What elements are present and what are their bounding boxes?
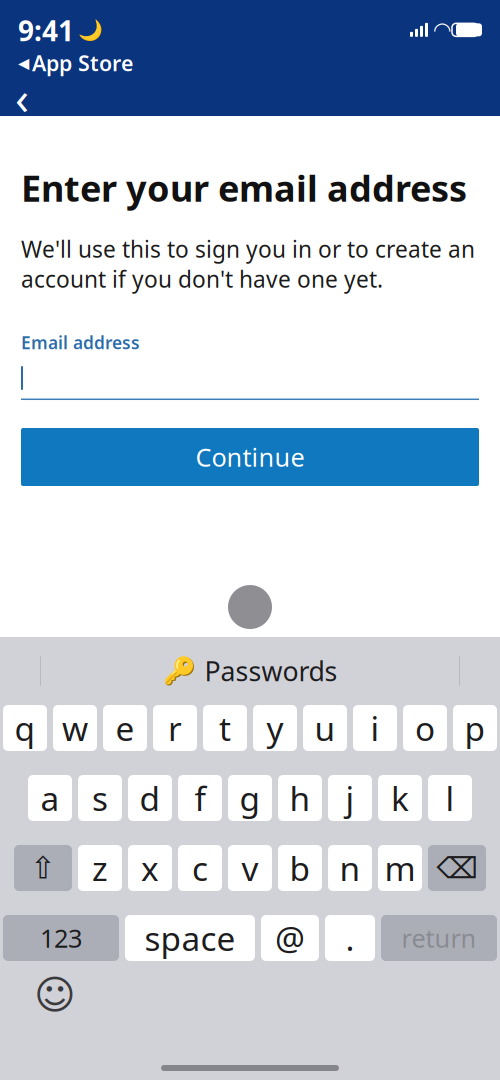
staticText: Continue bbox=[195, 440, 304, 474]
staticText: Email address bbox=[21, 331, 140, 354]
staticText: g bbox=[239, 776, 260, 820]
staticText: c bbox=[192, 846, 208, 890]
button[interactable]: Delete bbox=[428, 845, 486, 891]
button[interactable]: l bbox=[428, 775, 472, 821]
staticText: n bbox=[339, 846, 360, 890]
button[interactable]: 🔑 bbox=[162, 653, 337, 689]
button[interactable]: Back bbox=[0, 77, 44, 117]
staticText: 123 bbox=[40, 921, 82, 955]
button[interactable]: a bbox=[28, 775, 72, 821]
button[interactable]: u bbox=[303, 705, 347, 751]
button[interactable]: Emoji bbox=[33, 975, 77, 1015]
staticText: 🌙 bbox=[78, 19, 103, 42]
button[interactable]: c bbox=[178, 845, 222, 891]
button[interactable]: q bbox=[3, 705, 47, 751]
staticText: d bbox=[139, 776, 160, 820]
button[interactable]: . bbox=[325, 915, 375, 961]
staticText: ◀ bbox=[18, 55, 29, 71]
staticText: t bbox=[219, 706, 231, 750]
staticText: w bbox=[62, 706, 88, 750]
staticText: f bbox=[194, 776, 205, 820]
button[interactable]: t bbox=[203, 705, 247, 751]
button[interactable]: b bbox=[278, 845, 322, 891]
staticText: a bbox=[40, 776, 59, 820]
button[interactable]: Continue bbox=[21, 428, 479, 486]
button[interactable]: r bbox=[153, 705, 197, 751]
staticText: We'll use this to sign you in or to crea… bbox=[21, 234, 475, 294]
staticText: @ bbox=[275, 916, 305, 960]
button[interactable]: k bbox=[378, 775, 422, 821]
staticText: App Store bbox=[32, 49, 133, 77]
staticText: s bbox=[92, 776, 108, 820]
staticText: return bbox=[401, 921, 476, 955]
button[interactable]: j bbox=[328, 775, 372, 821]
staticText: space bbox=[144, 916, 235, 960]
staticText: z bbox=[92, 846, 108, 890]
button[interactable]: z bbox=[78, 845, 122, 891]
button[interactable]: e bbox=[103, 705, 147, 751]
staticText: i bbox=[370, 706, 379, 750]
button[interactable]: 123 bbox=[3, 915, 119, 961]
staticText: y bbox=[266, 706, 283, 750]
staticText: l bbox=[445, 776, 454, 820]
staticText: o bbox=[415, 706, 435, 750]
button[interactable]: m bbox=[378, 845, 422, 891]
staticText: 🔑 bbox=[162, 656, 195, 686]
button[interactable]: p bbox=[453, 705, 497, 751]
button[interactable]: i bbox=[353, 705, 397, 751]
button[interactable]: y bbox=[253, 705, 297, 751]
staticText: e bbox=[115, 706, 134, 750]
staticText: r bbox=[168, 706, 182, 750]
staticText: ☺ bbox=[34, 972, 76, 1018]
staticText: m bbox=[384, 846, 415, 890]
button[interactable]: s bbox=[78, 775, 122, 821]
staticText: . bbox=[345, 916, 354, 960]
button[interactable]: space bbox=[125, 915, 255, 961]
button[interactable]: Shift bbox=[14, 845, 72, 891]
staticText: j bbox=[345, 776, 354, 820]
staticText: ⇧ bbox=[30, 851, 56, 885]
staticText: ◠ bbox=[434, 18, 450, 42]
button[interactable]: d bbox=[128, 775, 172, 821]
button[interactable]: f bbox=[178, 775, 222, 821]
staticText: q bbox=[14, 706, 35, 750]
button[interactable]: return bbox=[381, 915, 497, 961]
staticText: x bbox=[141, 846, 159, 890]
staticText: 9:41 bbox=[18, 12, 74, 49]
button[interactable]: o bbox=[403, 705, 447, 751]
button[interactable]: n bbox=[328, 845, 372, 891]
staticText: Enter your email address bbox=[21, 164, 467, 212]
staticText: h bbox=[289, 776, 310, 820]
staticText: ⌫ bbox=[436, 851, 477, 885]
button[interactable]: h bbox=[278, 775, 322, 821]
staticText: u bbox=[314, 706, 335, 750]
staticText: b bbox=[289, 846, 310, 890]
button[interactable]: w bbox=[53, 705, 97, 751]
button[interactable]: v bbox=[228, 845, 272, 891]
staticText: p bbox=[464, 706, 485, 750]
staticText: ‹ bbox=[15, 67, 29, 127]
button[interactable]: x bbox=[128, 845, 172, 891]
staticText: v bbox=[241, 846, 258, 890]
staticText: k bbox=[391, 776, 409, 820]
button[interactable]: g bbox=[228, 775, 272, 821]
button[interactable]: @ bbox=[261, 915, 319, 961]
staticText: Passwords bbox=[204, 653, 337, 689]
